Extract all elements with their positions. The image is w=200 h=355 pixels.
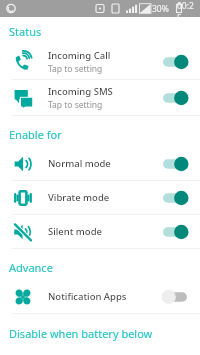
button[interactable]: Silent mode xyxy=(160,222,190,242)
button[interactable]: Notification Apps xyxy=(160,287,190,307)
button[interactable]: Incoming SMS xyxy=(160,88,190,108)
staticText: Incoming SMS xyxy=(48,85,113,98)
staticText: Advance xyxy=(9,260,53,275)
button[interactable]: Silent mode xyxy=(0,215,200,248)
button[interactable]: Vibrate mode xyxy=(0,181,200,214)
staticText: Tap to setting xyxy=(48,63,103,75)
staticText: Enable for xyxy=(9,127,62,142)
button[interactable]: Normal mode xyxy=(160,154,190,174)
staticText: Incoming Call xyxy=(48,49,111,62)
staticText: Disable when battery below xyxy=(9,326,153,341)
button[interactable]: Incoming Call xyxy=(160,52,190,72)
staticText: Status xyxy=(9,24,42,39)
staticText: Silent mode xyxy=(48,225,103,238)
button[interactable]: Normal mode xyxy=(0,147,200,180)
button[interactable]: Vibrate mode xyxy=(160,188,190,208)
button[interactable]: Incoming Call xyxy=(0,44,200,79)
staticText: Vibrate mode xyxy=(48,191,110,204)
staticText: Normal mode xyxy=(48,157,111,170)
button[interactable]: Incoming SMS xyxy=(0,80,200,115)
staticText: Notification Apps xyxy=(48,290,127,303)
staticText: Tap to setting xyxy=(48,99,103,111)
staticText: 30% xyxy=(152,3,169,15)
button[interactable]: Notification Apps xyxy=(0,280,200,313)
staticText: 00:25 xyxy=(177,0,197,17)
